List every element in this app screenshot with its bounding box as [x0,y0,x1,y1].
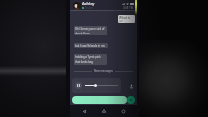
button[interactable]: Oh I know youre sick of talking [74,26,107,35]
button[interactable]: Pause [72,78,121,93]
staticText: Ashley [82,1,95,6]
button[interactable]: Send [127,96,135,104]
staticText: What is it? [119,16,134,22]
button[interactable]: holding a Tyent pink tote [74,54,107,65]
button[interactable]: Recent apps [118,106,128,116]
button[interactable]: but I saw Yolanda in my building [74,43,108,48]
staticText: Oh I know youre sick of talking [75,27,106,31]
staticText: Online [85,6,94,10]
button[interactable]: Profile photo [73,2,81,10]
staticText: holding a Tyent pink tote [75,55,106,59]
staticText: but I saw Yolanda in my building [75,44,107,47]
button[interactable]: What is it? [118,15,135,23]
staticText: New messages [94,69,113,73]
staticText: 3:08 PM [123,6,134,10]
button[interactable]: Back [79,106,90,117]
staticText: about Greg [75,32,90,34]
button[interactable]: Record voice message [127,82,135,90]
other: Pause [75,82,82,89]
button[interactable] [72,96,127,104]
button[interactable]: Home [99,106,109,116]
staticText: that looks bag [75,60,93,64]
